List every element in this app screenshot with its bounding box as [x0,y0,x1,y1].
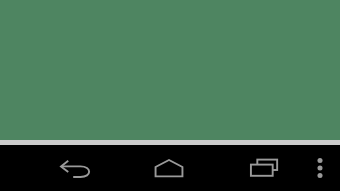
button[interactable]: Recent apps [245,154,285,182]
button[interactable]: Back [56,154,96,182]
button[interactable]: More options [306,154,334,182]
button[interactable]: Home [149,154,189,182]
